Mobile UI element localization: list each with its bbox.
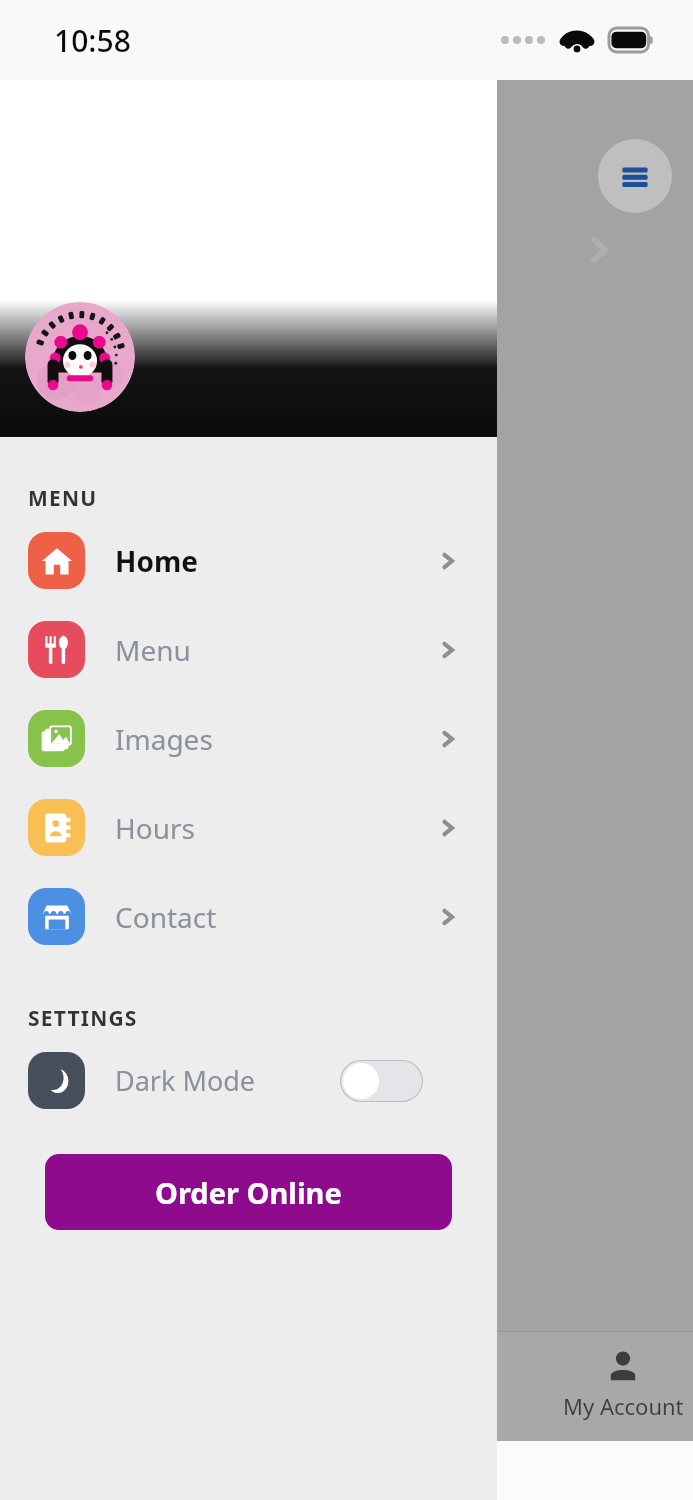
staticText: Dark Mode xyxy=(115,1062,256,1099)
staticText: SETTINGS xyxy=(28,1004,138,1033)
button[interactable]: Menu xyxy=(0,621,497,678)
button[interactable]: Dark Mode xyxy=(0,1052,497,1109)
staticText: Contact xyxy=(115,898,217,936)
staticText: Order Online xyxy=(155,1173,342,1212)
button[interactable]: Images xyxy=(0,710,497,767)
staticText: Home xyxy=(115,542,198,580)
staticText: MENU xyxy=(28,484,98,513)
button[interactable]: Hours xyxy=(0,799,497,856)
button[interactable]: Contact xyxy=(0,888,497,945)
staticText: Hours xyxy=(115,809,195,847)
staticText: My Account xyxy=(563,1391,684,1421)
staticText: rs xyxy=(478,1387,498,1417)
staticText: Images xyxy=(115,720,213,758)
button[interactable]: Home xyxy=(0,532,497,589)
button[interactable]: Open navigation menu xyxy=(598,139,672,213)
staticText: Menu xyxy=(115,631,191,669)
button[interactable]: Order Online xyxy=(45,1154,452,1230)
button[interactable]: Dark Mode toggle, off xyxy=(340,1060,423,1102)
button[interactable]: My Account xyxy=(540,1349,693,1421)
staticText: 10:58 xyxy=(54,20,131,61)
